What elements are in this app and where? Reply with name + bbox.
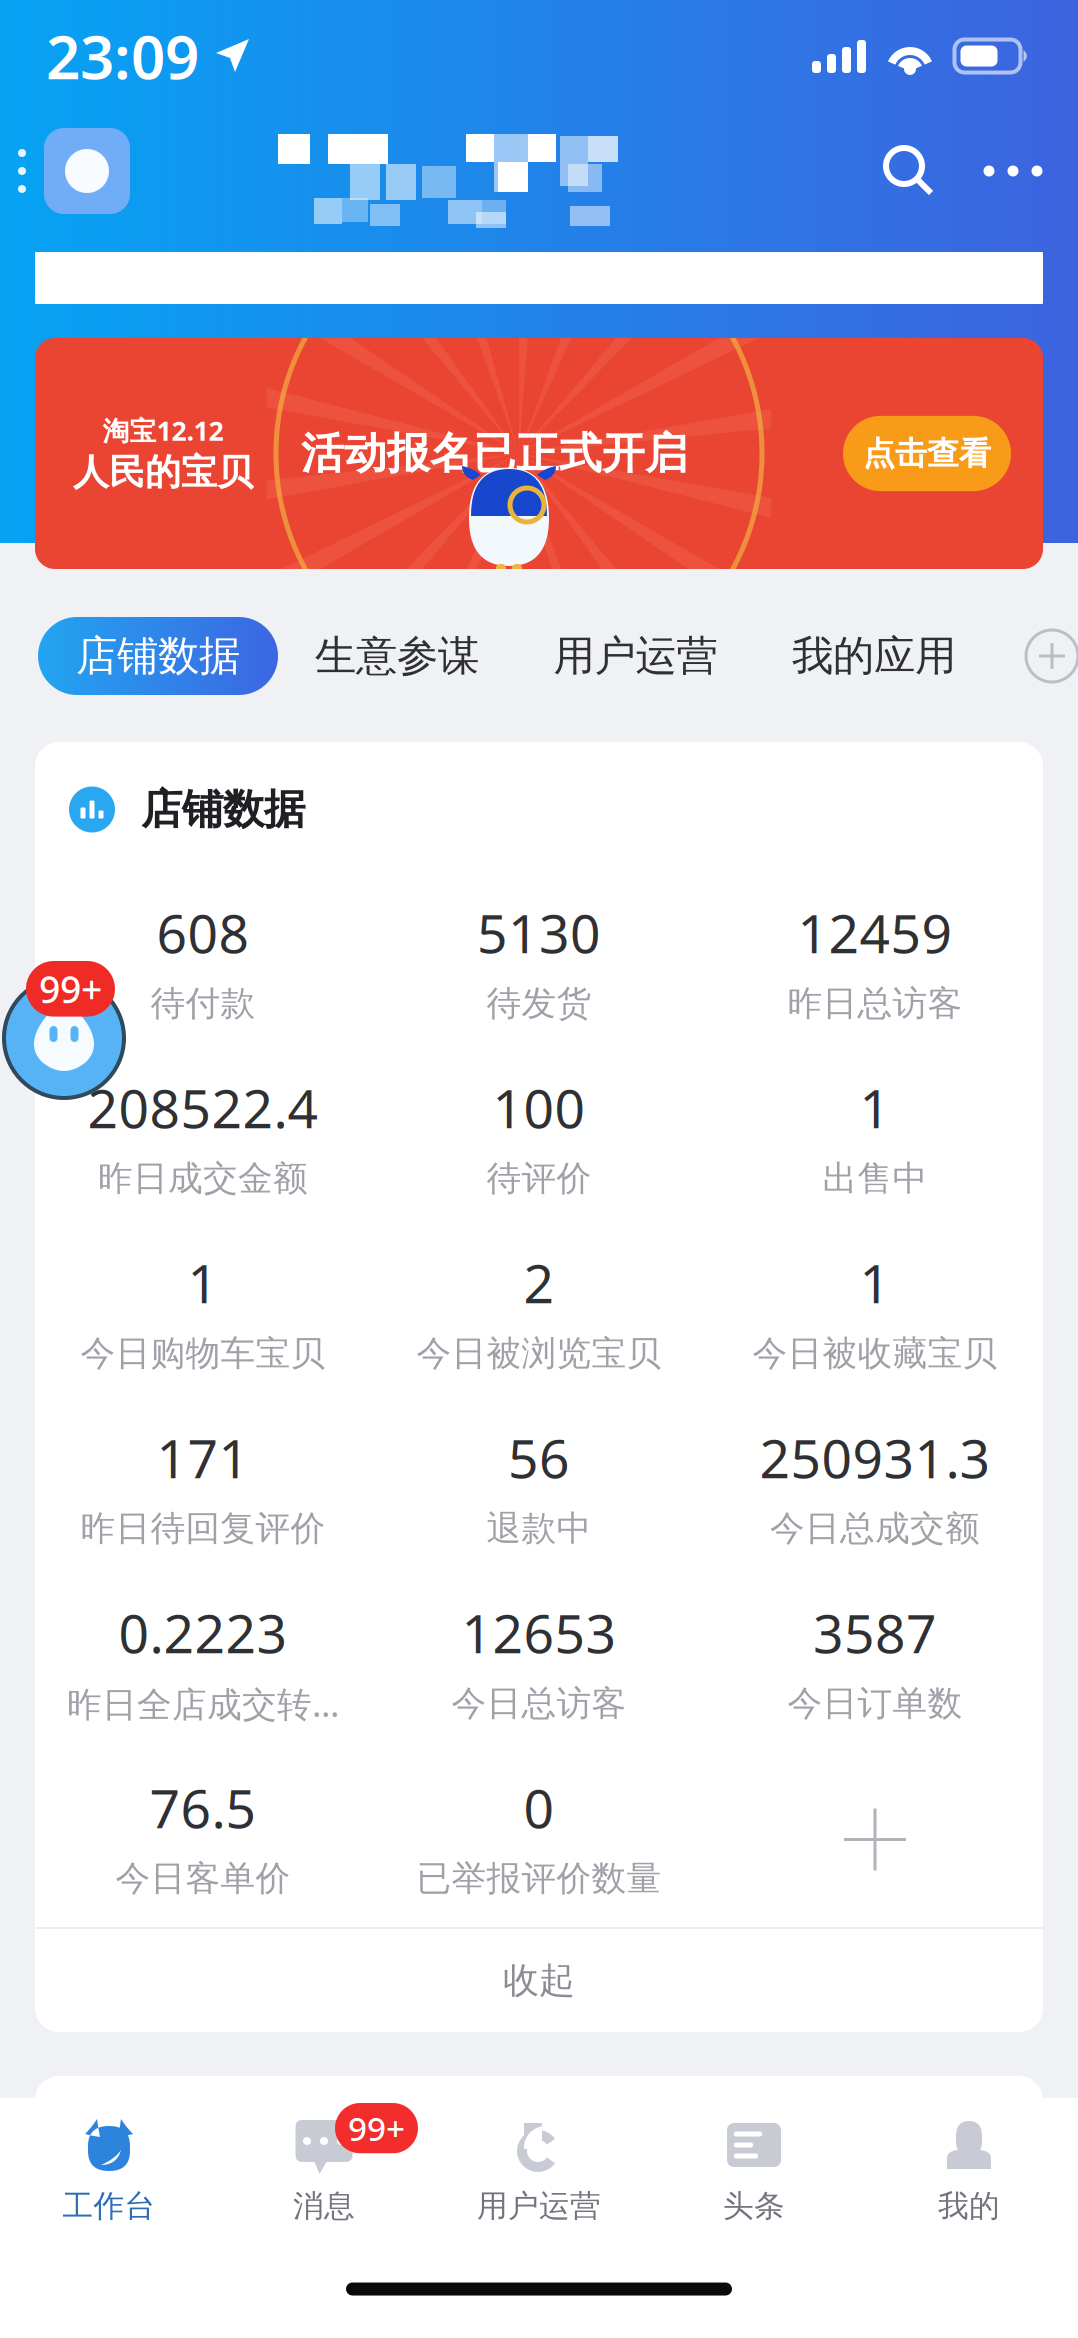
button[interactable]: 56 (371, 1402, 707, 1577)
staticText: 0 (523, 1772, 554, 1843)
staticText: 2 (523, 1247, 554, 1318)
staticText: 用户运营 (477, 2187, 601, 2225)
staticText: 活动报名已正式开启 (301, 427, 688, 480)
staticText: 退款中 (486, 1507, 591, 1550)
button[interactable]: 用户运营 (516, 617, 755, 695)
button[interactable]: Shop avatar (44, 128, 130, 214)
button[interactable]: 12653 (371, 1577, 707, 1752)
staticText: 我的 (938, 2187, 1000, 2225)
button[interactable]: 208522.4 (35, 1052, 371, 1227)
button[interactable]: 收起 (35, 1929, 1043, 2032)
staticText: 今日客单价 (115, 1857, 290, 1900)
button[interactable]: 店铺数据 (38, 617, 278, 695)
button[interactable]: 1 (707, 1052, 1043, 1227)
staticText: 已举报评价数量 (416, 1857, 661, 1900)
button[interactable]: 0.2223 (35, 1577, 371, 1752)
staticText: 今日订单数 (787, 1682, 962, 1725)
staticText: 工作台 (62, 2187, 155, 2225)
button[interactable]: 0 (371, 1752, 707, 1927)
staticText: 12459 (797, 897, 952, 968)
button[interactable]: Add module (1026, 630, 1078, 682)
staticText: 0.2223 (118, 1597, 287, 1668)
staticText: 昨日总访客 (787, 982, 962, 1025)
staticText: 待付款 (150, 982, 255, 1025)
button[interactable]: 2 (371, 1227, 707, 1402)
staticText: 昨日成交金额 (98, 1157, 308, 1200)
button[interactable]: 我的应用 (755, 617, 993, 695)
staticText: 昨日待回复评价 (80, 1507, 325, 1550)
staticText: 12653 (461, 1597, 616, 1668)
button[interactable]: 头条 (646, 2104, 861, 2234)
staticText: 用户运营 (553, 631, 717, 681)
staticText: 店铺数据 (141, 784, 305, 835)
button[interactable]: 生意参谋 (278, 617, 516, 695)
staticText: 250931.3 (759, 1422, 990, 1493)
button[interactable]: More (972, 130, 1054, 212)
staticText: 淘宝12.12 (102, 413, 223, 448)
staticText: 99+ (39, 964, 102, 1014)
staticText: 56 (508, 1422, 570, 1493)
staticText: 出售中 (822, 1157, 927, 1200)
button[interactable]: Search (868, 130, 950, 212)
staticText: 消息 (293, 2187, 355, 2225)
button[interactable]: 工作台 (1, 2104, 216, 2234)
staticText: 收起 (503, 1958, 575, 2003)
staticText: 99+ (348, 2106, 405, 2150)
staticText: 今日被收藏宝贝 (752, 1332, 997, 1375)
staticText: 头条 (723, 2187, 785, 2225)
button[interactable]: 我的 (861, 2104, 1076, 2234)
staticText: 昨日全店成交转… (67, 1680, 339, 1726)
button[interactable]: 12459 (707, 877, 1043, 1052)
staticText: 1 (859, 1247, 890, 1318)
staticText: 待评价 (486, 1157, 591, 1200)
button[interactable]: 淘宝12.12 (35, 338, 1043, 569)
button[interactable]: 250931.3 (707, 1402, 1043, 1577)
staticText: 店铺数据 (76, 631, 240, 681)
staticText: 208522.4 (87, 1072, 318, 1143)
staticText: 今日总访客 (451, 1682, 626, 1725)
staticText: 608 (156, 897, 249, 968)
button[interactable]: Customer service, 99 plus unread (0, 960, 160, 1100)
button[interactable]: 1 (35, 1227, 371, 1402)
staticText: 23:09 (46, 16, 199, 96)
staticText: 点击查看 (863, 434, 991, 473)
staticText: 我的应用 (792, 631, 956, 681)
button[interactable]: 3587 (707, 1577, 1043, 1752)
staticText: 100 (492, 1072, 585, 1143)
button[interactable]: 608 (35, 877, 371, 1052)
staticText: 1 (859, 1072, 890, 1143)
button[interactable]: 76.5 (35, 1752, 371, 1927)
staticText: 1 (187, 1247, 218, 1318)
staticText: 76.5 (149, 1772, 256, 1843)
button[interactable]: 171 (35, 1402, 371, 1577)
button[interactable]: 99+ (216, 2104, 431, 2234)
staticText: 待发货 (486, 982, 591, 1025)
staticText: 今日总成交额 (770, 1507, 980, 1550)
staticText: 5130 (477, 897, 601, 968)
button[interactable]: 100 (371, 1052, 707, 1227)
button[interactable]: 5130 (371, 877, 707, 1052)
staticText: 人民的宝贝 (73, 450, 253, 494)
button[interactable]: 用户运营 (431, 2104, 646, 2234)
staticText: 3587 (813, 1597, 937, 1668)
staticText: 171 (156, 1422, 249, 1493)
button[interactable]: Add metric (707, 1752, 1043, 1927)
staticText: 今日被浏览宝贝 (416, 1332, 661, 1375)
button[interactable]: 1 (707, 1227, 1043, 1402)
staticText: 生意参谋 (315, 631, 479, 681)
staticText: 今日购物车宝贝 (80, 1332, 325, 1375)
